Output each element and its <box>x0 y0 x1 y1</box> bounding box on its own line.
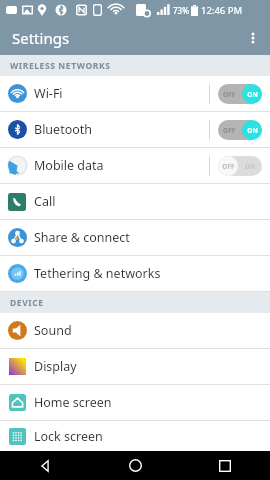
staticText: 12:46 PM <box>201 4 243 17</box>
button[interactable]: Lock screen <box>0 421 270 451</box>
staticText: OFF <box>223 126 236 135</box>
button[interactable]: Mobile data <box>0 148 270 184</box>
staticText: OFF <box>223 90 236 99</box>
button[interactable]: Share & connect <box>0 220 270 256</box>
staticText: OFF <box>223 162 236 171</box>
button[interactable]: OFF <box>218 156 262 176</box>
button[interactable]: Call <box>0 184 270 220</box>
button[interactable]: Recent apps <box>180 451 270 480</box>
staticText: Sound <box>34 322 72 339</box>
staticText: ON <box>247 90 258 99</box>
staticText: Home screen <box>34 394 112 411</box>
staticText: ON <box>245 126 256 135</box>
button[interactable]: Home <box>90 451 180 480</box>
button[interactable]: Home screen <box>0 385 270 421</box>
staticText: Mobile data <box>34 157 104 174</box>
staticText: Display <box>34 358 77 375</box>
staticText: ON <box>247 126 258 135</box>
staticText: Lock screen <box>34 428 103 445</box>
button[interactable]: OFF <box>218 120 262 140</box>
button[interactable]: Wi-Fi <box>0 76 270 112</box>
button[interactable]: Sound <box>0 313 270 349</box>
button[interactable]: Tethering & networks <box>0 256 270 292</box>
staticText: OFF <box>222 162 235 171</box>
button[interactable]: Display <box>0 349 270 385</box>
staticText: ON <box>245 162 256 171</box>
staticText: Share & connect <box>34 229 130 246</box>
button[interactable]: Bluetooth <box>0 112 270 148</box>
staticText: Tethering & networks <box>34 265 161 282</box>
button[interactable]: More options <box>236 21 270 55</box>
staticText: Wi-Fi <box>34 85 63 102</box>
staticText: Bluetooth <box>34 121 93 138</box>
staticText: ON <box>245 90 256 99</box>
button[interactable]: Back <box>0 451 90 480</box>
staticText: WIRELESS NETWORKS <box>10 60 111 72</box>
staticText: DEVICE <box>10 297 44 309</box>
staticText: Call <box>34 193 56 210</box>
button[interactable]: OFF <box>218 84 262 104</box>
staticText: Settings <box>12 28 70 48</box>
staticText: 73% <box>173 5 189 16</box>
